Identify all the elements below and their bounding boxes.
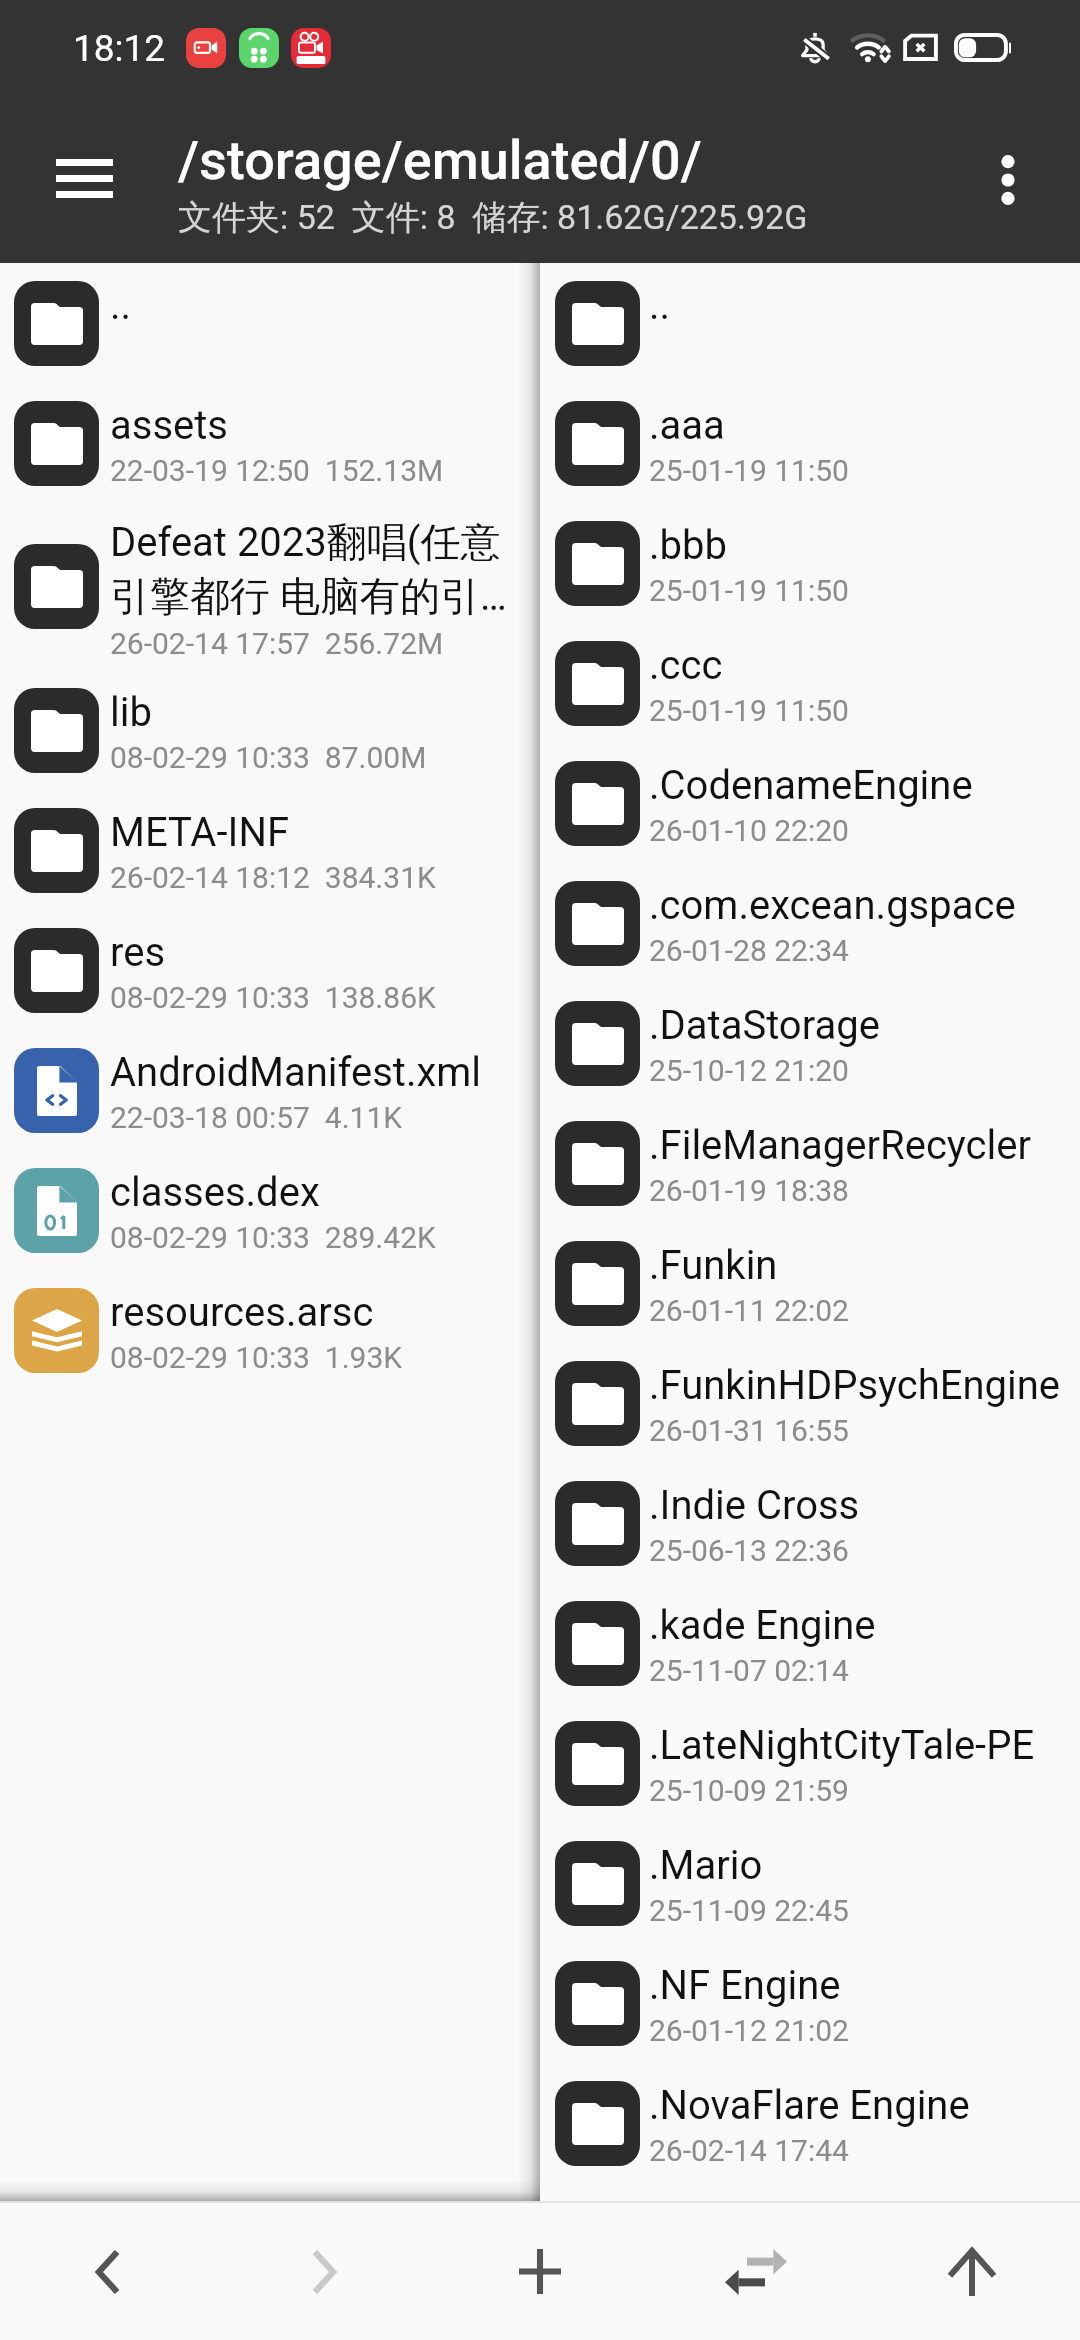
button[interactable]: Up xyxy=(864,2203,1080,2340)
staticText: .LateNightCityTale-PE xyxy=(649,1722,1035,1769)
button[interactable]: .. xyxy=(540,263,1080,383)
button[interactable]: New xyxy=(432,2203,648,2340)
button[interactable]: AndroidManifest.xml xyxy=(0,1030,540,1150)
staticText: 08-02-29 10:33 138.86K xyxy=(110,980,436,1015)
staticText: .CodenameEngine xyxy=(649,762,973,809)
staticText: .FunkinHDPsychEngine xyxy=(649,1362,1061,1409)
button[interactable]: .DataStorage xyxy=(540,983,1080,1103)
staticText: .. xyxy=(110,282,132,329)
staticText: 26-01-11 22:02 xyxy=(649,1293,849,1328)
staticText: 25-01-19 11:50 xyxy=(649,453,849,488)
staticText: .Mario xyxy=(649,1842,763,1889)
staticText: .NF Engine xyxy=(649,1962,841,2009)
button[interactable]: .Mario xyxy=(540,1823,1080,1943)
staticText: 26-02-14 18:12 384.31K xyxy=(110,860,436,895)
button[interactable]: .Funkin xyxy=(540,1223,1080,1343)
staticText: .Indie Cross xyxy=(649,1482,860,1529)
staticText: resources.arsc xyxy=(110,1289,374,1336)
staticText: 26-02-14 17:57 256.72M xyxy=(110,626,444,661)
staticText: lib xyxy=(110,689,152,736)
staticText: 25-06-13 22:36 xyxy=(649,1533,849,1568)
staticText: .aaa xyxy=(649,402,725,449)
button[interactable]: .bbb xyxy=(540,503,1080,623)
button[interactable]: Forward xyxy=(216,2203,432,2340)
staticText: Defeat 2023翻唱(任意引擎都行 电脑有的引… xyxy=(110,517,516,622)
button[interactable]: .CodenameEngine xyxy=(540,743,1080,863)
button[interactable]: Transfer xyxy=(648,2203,864,2340)
staticText: 25-11-07 02:14 xyxy=(649,1653,849,1688)
button[interactable]: More options xyxy=(952,124,1064,236)
staticText: .Funkin xyxy=(649,1242,778,1289)
staticText: 25-11-09 22:45 xyxy=(649,1893,849,1928)
staticText: 18:12 xyxy=(73,27,166,70)
staticText: .FileManagerRecycler xyxy=(649,1122,1031,1169)
button[interactable]: .aaa xyxy=(540,383,1080,503)
button[interactable]: .NF Engine xyxy=(540,1943,1080,2063)
staticText: 26-01-19 18:38 xyxy=(649,1173,849,1208)
staticText: .DataStorage xyxy=(649,1002,880,1049)
staticText: /storage/emulated/0/ xyxy=(178,129,702,192)
button[interactable]: classes.dex xyxy=(0,1150,540,1270)
button[interactable]: .FunkinHDPsychEngine xyxy=(540,1343,1080,1463)
staticText: assets xyxy=(110,402,228,449)
button[interactable]: .kade Engine xyxy=(540,1583,1080,1703)
staticText: 08-02-29 10:33 289.42K xyxy=(110,1220,436,1255)
staticText: 22-03-19 12:50 152.13M xyxy=(110,453,444,488)
button[interactable]: META-INF xyxy=(0,790,540,910)
staticText: 08-02-29 10:33 1.93K xyxy=(110,1340,403,1375)
button[interactable]: resources.arsc xyxy=(0,1270,540,1390)
staticText: 文件夹: 52 文件: 8 储存: 81.62G/225.92G xyxy=(178,196,808,239)
button[interactable]: .NovaFlare Engine xyxy=(540,2063,1080,2183)
button[interactable]: .LateNightCityTale-PE xyxy=(540,1703,1080,1823)
staticText: 25-10-12 21:20 xyxy=(649,1053,849,1088)
staticText: .com.excean.gspace xyxy=(649,882,1016,929)
button[interactable]: Back xyxy=(0,2203,216,2340)
staticText: 26-01-31 16:55 xyxy=(649,1413,849,1448)
staticText: .kade Engine xyxy=(649,1602,876,1649)
staticText: 25-01-19 11:50 xyxy=(649,693,849,728)
staticText: .NovaFlare Engine xyxy=(649,2082,970,2129)
staticText: .. xyxy=(649,282,671,329)
staticText: 26-01-10 22:20 xyxy=(649,813,849,848)
button[interactable]: .com.excean.gspace xyxy=(540,863,1080,983)
button[interactable]: lib xyxy=(0,670,540,790)
staticText: AndroidManifest.xml xyxy=(110,1049,482,1096)
staticText: 25-10-09 21:59 xyxy=(649,1773,849,1808)
button[interactable]: .. xyxy=(0,263,540,383)
button[interactable]: Defeat 2023翻唱(任意引擎都行 电脑有的引… xyxy=(0,503,540,670)
staticText: 22-03-18 00:57 4.11K xyxy=(110,1100,403,1135)
staticText: 26-01-12 21:02 xyxy=(649,2013,849,2048)
button[interactable]: Menu xyxy=(28,122,140,234)
staticText: classes.dex xyxy=(110,1169,320,1216)
staticText: res xyxy=(110,929,166,976)
staticText: 08-02-29 10:33 87.00M xyxy=(110,740,427,775)
staticText: META-INF xyxy=(110,809,290,856)
button[interactable]: .Indie Cross xyxy=(540,1463,1080,1583)
button[interactable]: res xyxy=(0,910,540,1030)
staticText: .bbb xyxy=(649,522,727,569)
button[interactable]: assets xyxy=(0,383,540,503)
staticText: 26-01-28 22:34 xyxy=(649,933,849,968)
button[interactable]: .FileManagerRecycler xyxy=(540,1103,1080,1223)
staticText: 25-01-19 11:50 xyxy=(649,573,849,608)
staticText: .ccc xyxy=(649,642,723,689)
staticText: 26-02-14 17:44 xyxy=(649,2133,849,2168)
button[interactable]: .ccc xyxy=(540,623,1080,743)
